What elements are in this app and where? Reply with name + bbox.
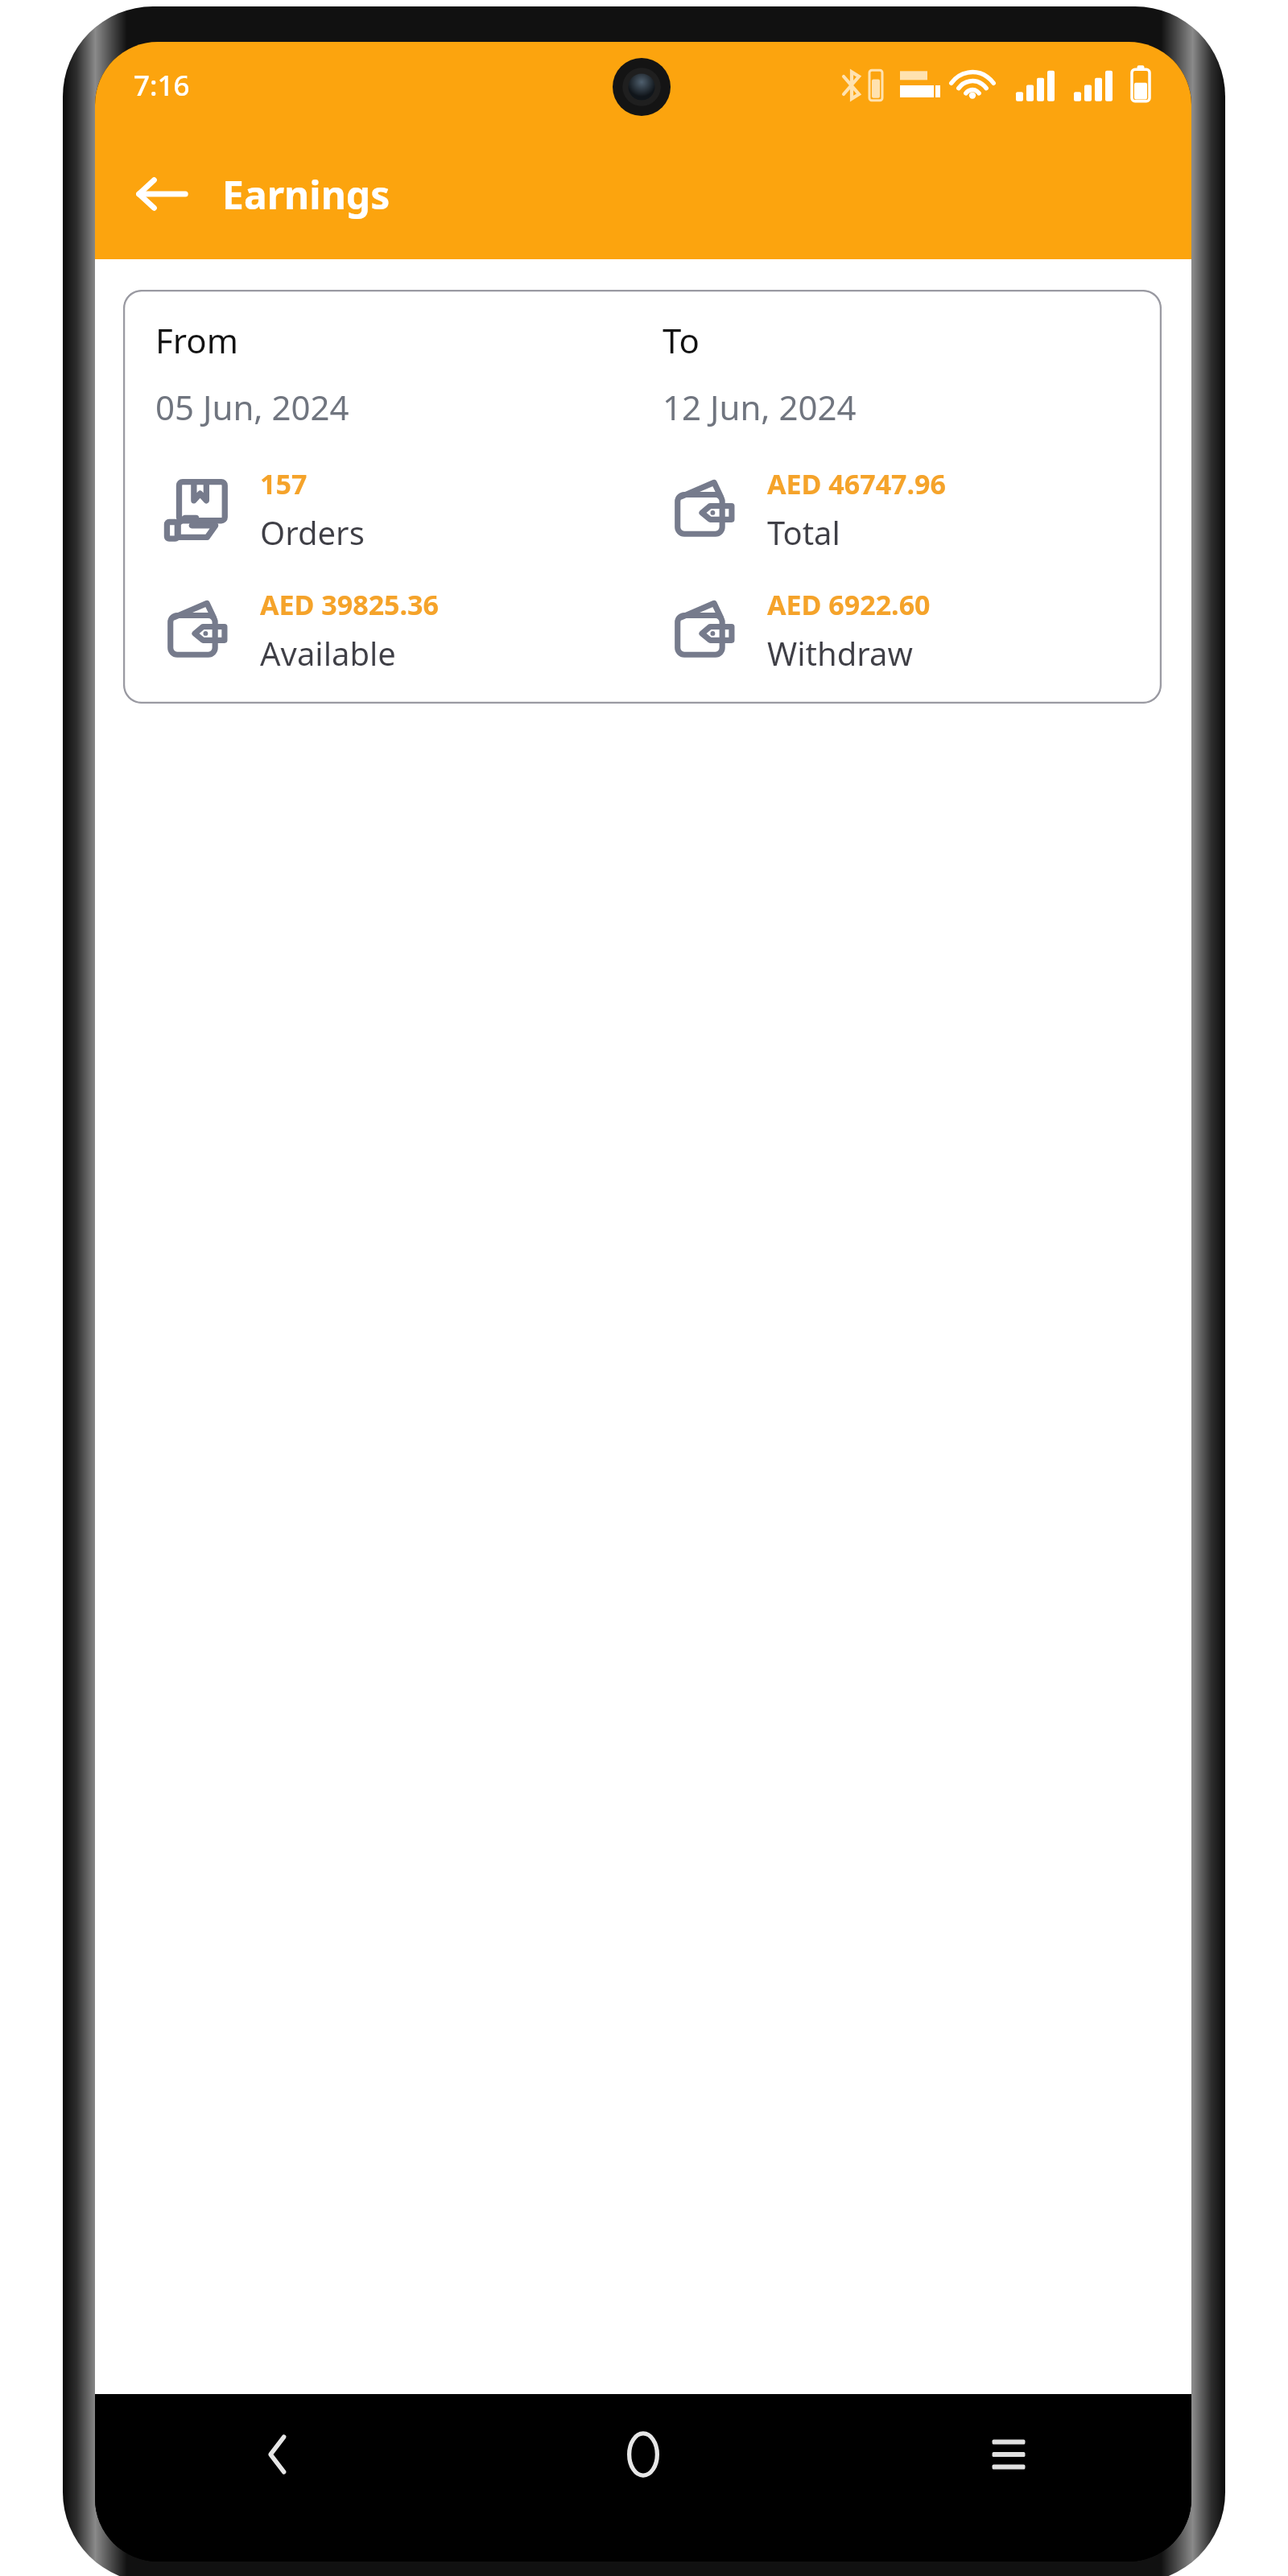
staticText: Earnings xyxy=(222,168,390,221)
staticText: To xyxy=(663,317,700,363)
button[interactable]: 157 xyxy=(155,465,663,554)
staticText: 05 Jun, 2024 xyxy=(155,384,349,430)
staticText: 157 xyxy=(260,465,308,502)
button[interactable]: Home xyxy=(460,2394,826,2515)
button[interactable]: From xyxy=(123,290,1162,704)
staticText: Total xyxy=(767,510,840,554)
button[interactable]: Back xyxy=(95,2394,460,2515)
button[interactable]: Recents xyxy=(826,2394,1191,2515)
button[interactable]: AED 39825.36 xyxy=(155,586,663,675)
button[interactable]: AED 6922.60 xyxy=(663,586,1137,675)
staticText: Orders xyxy=(260,510,365,554)
staticText: AED 39825.36 xyxy=(260,586,439,623)
staticText: AED 46747.96 xyxy=(767,465,946,502)
button[interactable]: AED 46747.96 xyxy=(663,465,1137,554)
staticText: 12 Jun, 2024 xyxy=(663,384,857,430)
staticText: 7:16 xyxy=(134,66,190,105)
staticText: Available xyxy=(260,631,396,675)
staticText: From xyxy=(155,317,238,363)
button[interactable]: Back xyxy=(122,155,200,233)
staticText: Withdraw xyxy=(767,631,913,675)
staticText: AED 6922.60 xyxy=(767,586,931,623)
